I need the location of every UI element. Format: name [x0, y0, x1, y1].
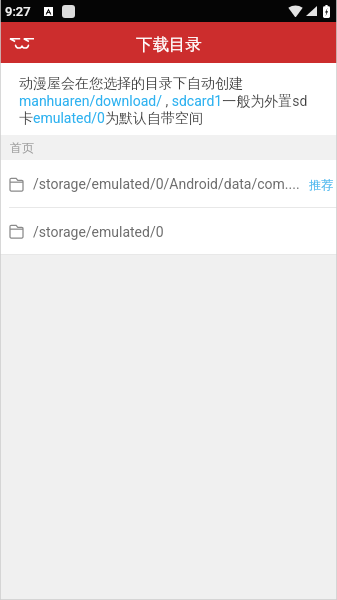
staticText: /storage/emulated/0/Android/data/com....	[33, 176, 303, 192]
staticText: 动漫屋会在您选择的目录下自动创建 manhuaren/download/ , s…	[19, 75, 308, 127]
staticText: 推荐	[309, 177, 333, 192]
staticText: 下载目录	[136, 34, 202, 55]
staticText: 首页	[10, 140, 34, 155]
staticText: /storage/emulated/0	[33, 224, 333, 240]
button[interactable]: /storage/emulated/0/Android/data/com....	[0, 160, 337, 208]
staticText: 9:27	[5, 4, 31, 19]
button[interactable]: Menu	[2, 23, 42, 63]
button[interactable]: /storage/emulated/0	[0, 208, 337, 255]
